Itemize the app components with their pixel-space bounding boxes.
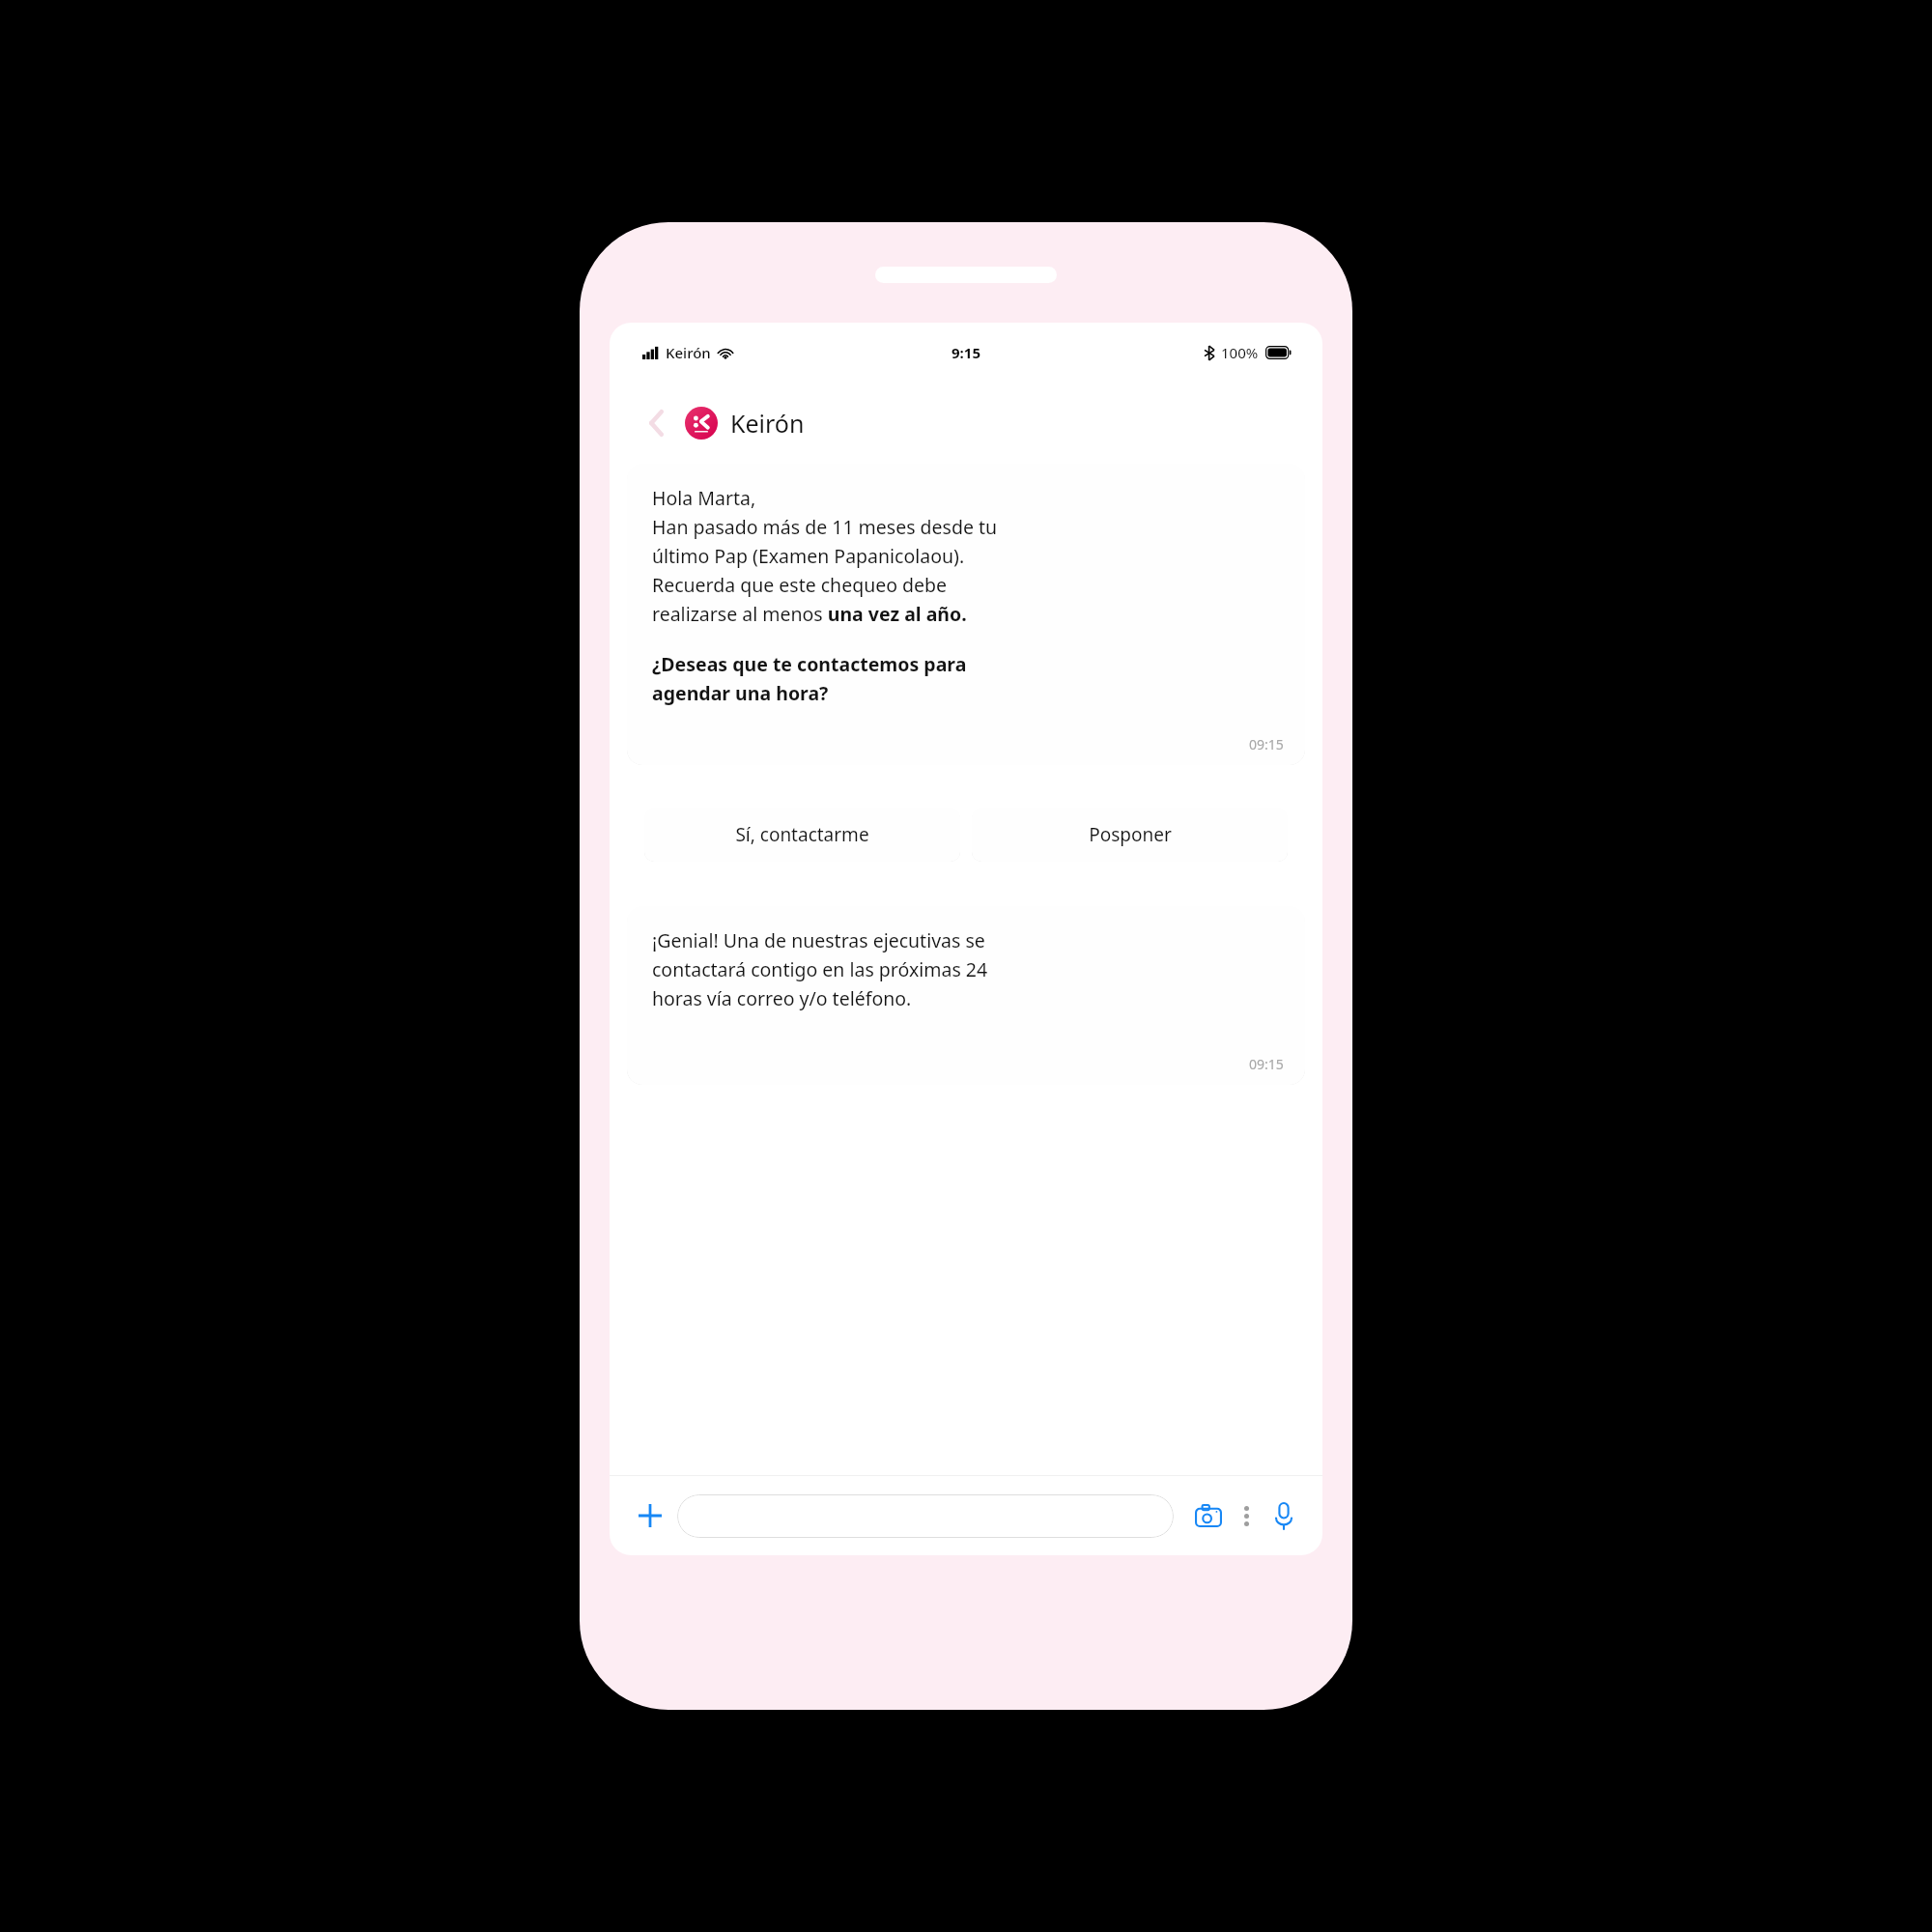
button[interactable]: Add attachment — [629, 1494, 671, 1537]
staticText: 9:15 — [952, 343, 980, 362]
button[interactable]: Back — [635, 402, 677, 444]
button[interactable]: Sí, contactarme — [644, 808, 960, 862]
staticText: ¡Genial! Una de nuestras ejecutivas se c… — [652, 927, 988, 1010]
staticText: 100% — [1221, 343, 1259, 362]
button[interactable]: More options — [1232, 1501, 1261, 1530]
staticText: Keirón — [730, 407, 805, 440]
button[interactable]: Voice message — [1264, 1496, 1303, 1535]
staticText: 09:15 — [1249, 1055, 1284, 1073]
staticText: Sí, contactarme — [735, 822, 869, 847]
button[interactable]: Posponer — [972, 808, 1288, 862]
button[interactable]: ¡Genial! Una de nuestras ejecutivas se c… — [627, 906, 1305, 1085]
button[interactable]: Camera — [1189, 1496, 1228, 1535]
staticText: ¿Deseas que te contactemos para agendar … — [652, 651, 967, 705]
button[interactable]: Message input — [677, 1494, 1174, 1538]
staticText: Hola Marta, Han pasado más de 11 meses d… — [652, 485, 998, 626]
staticText: Keirón — [666, 343, 711, 362]
staticText: 09:15 — [1249, 735, 1284, 753]
staticText: Posponer — [1089, 822, 1172, 847]
button[interactable]: Hola Marta, Han pasado más de 11 meses d… — [627, 464, 1305, 765]
